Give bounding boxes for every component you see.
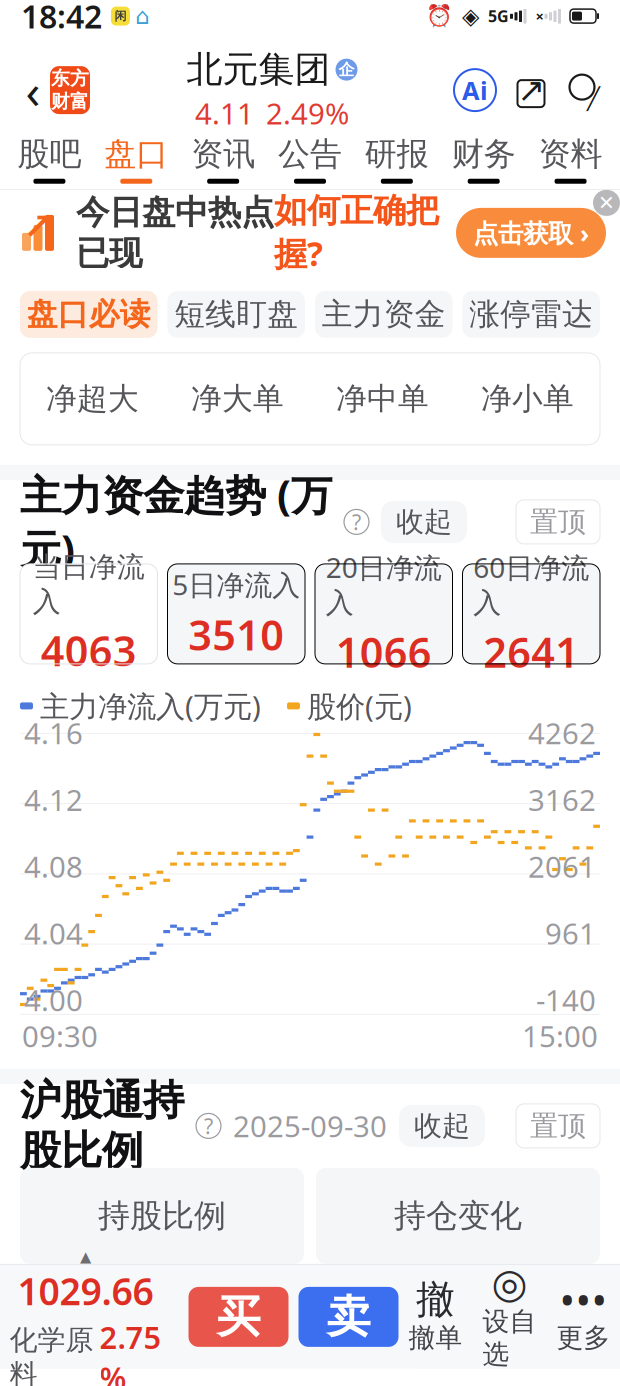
button[interactable]: Close ad bbox=[593, 190, 620, 216]
staticText: 短线盯盘 bbox=[174, 296, 298, 333]
button[interactable]: 净中单 bbox=[310, 353, 455, 445]
staticText: 资料 bbox=[539, 134, 603, 174]
staticText bbox=[234, 657, 239, 680]
staticText: 收起 bbox=[414, 1109, 470, 1143]
button[interactable]: Back bbox=[16, 61, 50, 119]
staticText: 卖 bbox=[326, 1290, 370, 1344]
staticText: 持仓变化 bbox=[394, 1196, 522, 1235]
staticText: 公告 bbox=[278, 134, 342, 174]
staticText: 4063 bbox=[41, 623, 137, 678]
button[interactable]: 收起 bbox=[399, 1105, 485, 1147]
staticText: 盘口必读 bbox=[27, 296, 151, 333]
button[interactable]: 置顶 bbox=[516, 1104, 600, 1148]
button[interactable]: Help bbox=[196, 1113, 221, 1138]
staticText: 更多 bbox=[556, 1321, 610, 1354]
staticText: 15:00 bbox=[522, 1016, 598, 1055]
button[interactable]: 资料 bbox=[527, 129, 614, 189]
button[interactable]: 点击获取 › bbox=[456, 208, 606, 258]
button[interactable]: East Money home bbox=[50, 66, 90, 114]
button[interactable]: 5日净流入 bbox=[167, 564, 305, 673]
staticText: 买 bbox=[216, 1290, 260, 1344]
button[interactable]: 持仓变化 bbox=[316, 1168, 600, 1264]
button[interactable]: AI assistant bbox=[454, 69, 496, 111]
staticText: 2.49% bbox=[266, 94, 349, 133]
staticText: 净中单 bbox=[336, 380, 429, 418]
button[interactable]: 资讯 bbox=[180, 129, 267, 189]
staticText bbox=[529, 657, 534, 680]
button[interactable]: 买 bbox=[188, 1287, 288, 1347]
button[interactable]: ◎ bbox=[472, 1277, 546, 1357]
staticText: -140 bbox=[536, 980, 596, 1019]
staticText: 研报 bbox=[365, 134, 429, 174]
staticText: 持股比例 bbox=[98, 1196, 226, 1235]
button[interactable]: Share bbox=[514, 73, 548, 107]
staticText: ‹ bbox=[25, 58, 40, 122]
staticText: 4.12 bbox=[24, 780, 83, 819]
staticText: 撤 bbox=[416, 1276, 455, 1323]
staticText: 2061 bbox=[528, 847, 596, 886]
staticText: 2.75% bbox=[99, 1317, 161, 1386]
button[interactable]: 收起 bbox=[381, 501, 467, 543]
button[interactable]: 公告 bbox=[267, 129, 353, 189]
button[interactable]: 盘口 bbox=[93, 129, 180, 189]
button[interactable]: 涨停雷达 bbox=[462, 291, 600, 338]
button[interactable]: 卖 bbox=[298, 1287, 398, 1347]
staticText: 当日净流入 bbox=[33, 550, 145, 619]
staticText: 企 bbox=[338, 60, 354, 79]
staticText: 20日净流入 bbox=[326, 549, 442, 620]
staticText: 3510 bbox=[188, 607, 284, 662]
button[interactable]: 短线盯盘 bbox=[167, 291, 305, 338]
staticText: 盘口 bbox=[104, 134, 168, 174]
staticText: Ai bbox=[462, 73, 488, 107]
staticText: 主力资金 bbox=[322, 296, 446, 333]
button[interactable]: 主力资金 bbox=[315, 291, 452, 338]
staticText: 净小单 bbox=[481, 380, 574, 418]
staticText: 北元集团 bbox=[186, 47, 330, 92]
staticText: 1029.66 bbox=[17, 1266, 153, 1316]
button[interactable]: 研报 bbox=[353, 129, 440, 189]
staticText: ▼ bbox=[82, 659, 95, 678]
staticText: 09:30 bbox=[22, 1016, 98, 1055]
staticText: 5日净流入 bbox=[172, 566, 300, 603]
button[interactable]: 净超大 bbox=[20, 353, 165, 445]
button[interactable]: 撤 bbox=[398, 1277, 472, 1357]
button[interactable]: 20日净流入 bbox=[315, 564, 452, 673]
staticText: × bbox=[535, 6, 543, 26]
staticText: 置顶 bbox=[530, 1109, 586, 1143]
staticText: 设自选 bbox=[482, 1305, 536, 1371]
staticText: 18:42 bbox=[21, 0, 102, 37]
staticText: 股价(元) bbox=[307, 686, 412, 725]
button[interactable]: ••• bbox=[546, 1277, 620, 1357]
staticText: 点击获取 › bbox=[473, 216, 589, 250]
button[interactable]: 当日净流入 bbox=[20, 564, 157, 673]
button[interactable]: 持股比例 bbox=[20, 1168, 304, 1264]
staticText: 如何正确把握? bbox=[274, 190, 439, 275]
staticText: 沪股通持股比例 bbox=[20, 1075, 184, 1177]
staticText: 2641 bbox=[483, 624, 579, 679]
staticText: 2025-09-30 bbox=[233, 1106, 387, 1145]
button[interactable]: 股吧 bbox=[6, 129, 93, 189]
button[interactable]: 财务 bbox=[440, 129, 527, 189]
staticText: 1066 bbox=[336, 624, 432, 679]
staticText: ⌂ bbox=[135, 3, 149, 29]
staticText: 主力资金趋势 (万元) bbox=[20, 467, 332, 577]
staticText: 4.08 bbox=[24, 847, 83, 886]
staticText: 涨停雷达 bbox=[469, 296, 593, 333]
staticText: 4.16 bbox=[24, 713, 83, 752]
button[interactable]: Help bbox=[344, 509, 369, 534]
staticText: 化学原料 bbox=[9, 1323, 93, 1386]
staticText: 4.00 bbox=[24, 980, 83, 1019]
button[interactable]: 净大单 bbox=[165, 353, 310, 445]
button[interactable]: 置顶 bbox=[516, 500, 600, 544]
button[interactable]: 净小单 bbox=[455, 353, 600, 445]
button[interactable]: 60日净流入 bbox=[462, 564, 600, 673]
staticText bbox=[381, 657, 386, 680]
staticText: ✕ bbox=[598, 192, 615, 214]
button[interactable]: Search bbox=[566, 71, 604, 109]
staticText: 资讯 bbox=[191, 134, 255, 174]
staticText: ╱ bbox=[587, 86, 600, 111]
button[interactable]: 盘口必读 bbox=[20, 291, 157, 338]
staticText: 4262 bbox=[528, 713, 596, 752]
staticText: ▲ bbox=[80, 1248, 91, 1265]
staticText: 主力净流入(万元) bbox=[40, 686, 261, 725]
